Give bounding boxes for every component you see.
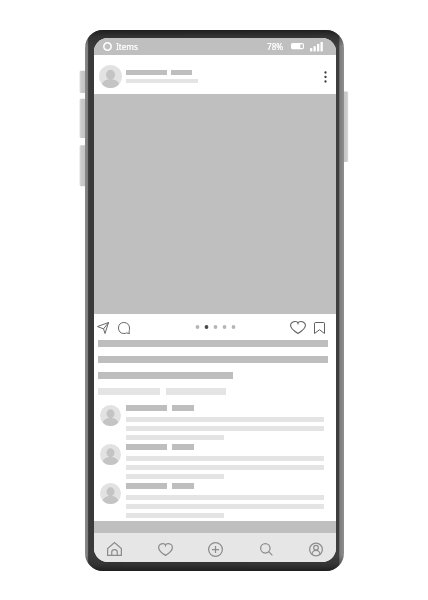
button[interactable]: Activity bbox=[152, 536, 178, 562]
button[interactable]: Share bbox=[97, 318, 109, 337]
button[interactable]: Comment bbox=[118, 318, 130, 337]
button[interactable]: Create bbox=[202, 536, 228, 562]
button[interactable] bbox=[94, 483, 336, 518]
button[interactable]: Like bbox=[290, 318, 306, 337]
staticText: Items bbox=[116, 41, 138, 52]
button[interactable] bbox=[94, 444, 336, 479]
button[interactable]: More options bbox=[317, 69, 333, 85]
button[interactable]: Search bbox=[253, 536, 279, 562]
button[interactable]: Profile bbox=[303, 536, 329, 562]
button[interactable] bbox=[94, 405, 336, 440]
button[interactable]: Home bbox=[101, 536, 127, 562]
button[interactable]: Save bbox=[314, 318, 325, 337]
staticText: 78% bbox=[267, 41, 284, 52]
